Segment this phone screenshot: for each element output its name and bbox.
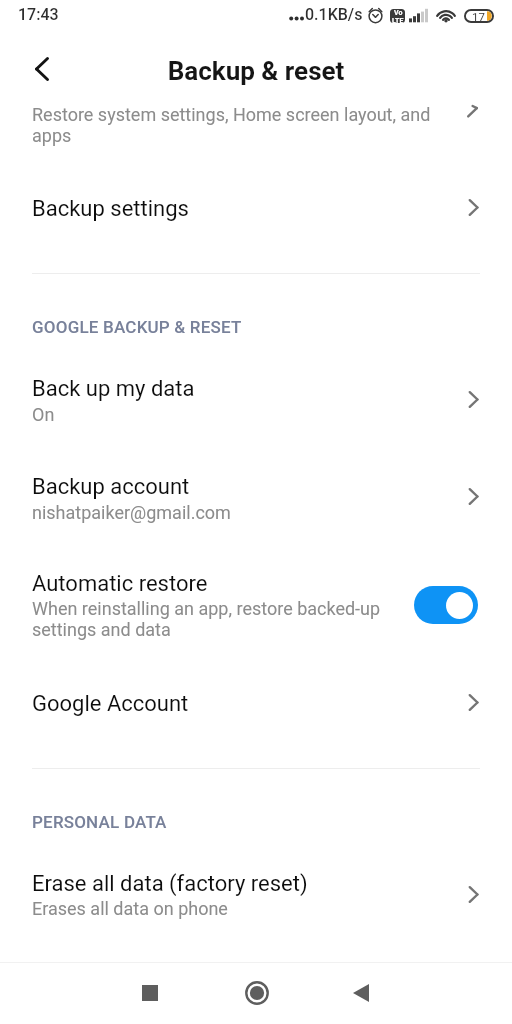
staticText: LTE [392, 17, 404, 23]
staticText: Automatic restore [32, 571, 208, 597]
staticText: Backup & reset [0, 56, 512, 86]
button[interactable]: Automatic restore [0, 571, 512, 657]
staticText: GOOGLE BACKUP & RESET [32, 317, 242, 337]
button[interactable]: Google Account [0, 691, 512, 737]
button[interactable]: Restore system settings, Home screen lay… [0, 96, 512, 152]
staticText: Erases all data on phone [32, 898, 228, 919]
button[interactable]: Back [338, 963, 383, 1024]
staticText: 17 [472, 10, 485, 23]
button[interactable]: Backup account [0, 474, 512, 546]
button[interactable]: Home [234, 963, 279, 1024]
staticText: On [32, 404, 55, 425]
staticText: Backup settings [32, 196, 189, 222]
button[interactable]: Erase all data (factory reset) [0, 871, 512, 943]
button[interactable]: Automatic restore, on [414, 586, 478, 624]
button[interactable]: Backup settings [0, 196, 512, 242]
staticText: nishatpaiker@gmail.com [32, 502, 231, 523]
staticText: Vo [394, 9, 403, 17]
staticText: Google Account [32, 691, 189, 717]
button[interactable]: Back up my data [0, 376, 512, 448]
staticText: 0.1KB/s [305, 5, 363, 24]
staticText: Back up my data [32, 376, 195, 402]
staticText: Erase all data (factory reset) [32, 871, 308, 897]
staticText: Restore system settings, Home screen lay… [32, 104, 431, 146]
staticText: 17:43 [18, 5, 59, 24]
staticText: Backup account [32, 474, 190, 500]
button[interactable]: Recent apps [128, 963, 172, 1024]
staticText: PERSONAL DATA [32, 812, 167, 832]
button[interactable]: Navigate up [20, 47, 64, 91]
staticText: When reinstalling an app, restore backed… [32, 598, 381, 640]
